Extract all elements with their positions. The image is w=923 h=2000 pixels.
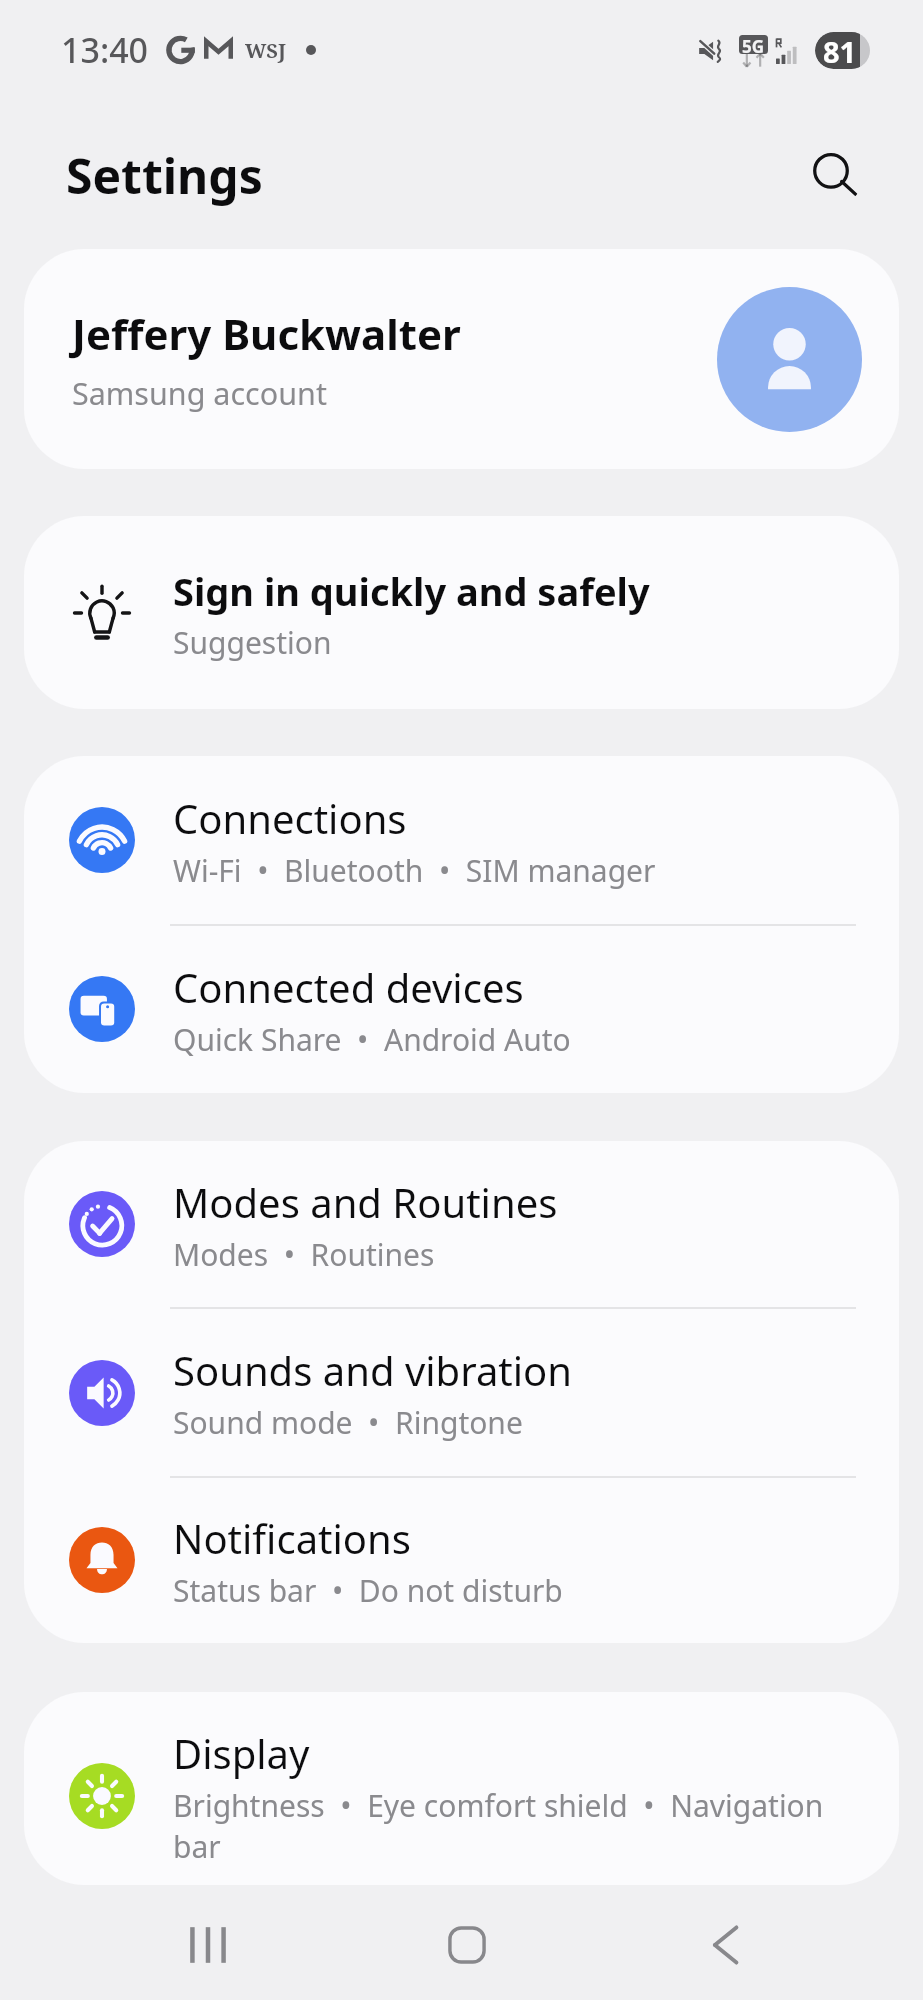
staticText: Sounds and vibration	[173, 1348, 572, 1396]
staticText: 5G	[742, 35, 765, 54]
button[interactable]: Recents	[153, 1888, 263, 2000]
button[interactable]: Sign in quickly and safely	[24, 516, 899, 709]
button[interactable]: Connections	[24, 756, 899, 924]
staticText: Display	[173, 1731, 310, 1779]
staticText: WSJ	[245, 37, 286, 64]
staticText: Jeffery Buckwalter	[72, 311, 461, 361]
button[interactable]: Modes and Routines	[24, 1141, 899, 1307]
staticText: Status bar • Do not disturb	[173, 1570, 563, 1611]
staticText: Settings	[66, 143, 263, 208]
button[interactable]: Display	[24, 1692, 899, 1885]
button[interactable]: Connected devices	[24, 926, 899, 1092]
button[interactable]: Notifications	[24, 1478, 899, 1642]
button[interactable]: Home	[412, 1888, 522, 2000]
button[interactable]: Back	[670, 1888, 780, 2000]
staticText: Wi-Fi • Bluetooth • SIM manager	[173, 850, 656, 891]
button[interactable]: Search	[796, 136, 866, 206]
staticText: Connected devices	[173, 965, 524, 1013]
staticText: Brightness • Eye comfort shield • Naviga…	[173, 1785, 857, 1867]
staticText: Sign in quickly and safely	[173, 568, 650, 616]
staticText: Quick Share • Android Auto	[173, 1019, 571, 1060]
staticText: Sound mode • Ringtone	[173, 1402, 523, 1443]
staticText: 13:40	[61, 27, 149, 73]
staticText: 81	[823, 32, 857, 69]
staticText: Connections	[173, 796, 407, 844]
staticText: Modes • Routines	[173, 1234, 435, 1275]
staticText: Notifications	[173, 1516, 411, 1564]
button[interactable]: Sounds and vibration	[24, 1309, 899, 1476]
staticText: Suggestion	[173, 622, 332, 663]
staticText: Samsung account	[72, 372, 327, 414]
staticText: Modes and Routines	[173, 1180, 558, 1228]
